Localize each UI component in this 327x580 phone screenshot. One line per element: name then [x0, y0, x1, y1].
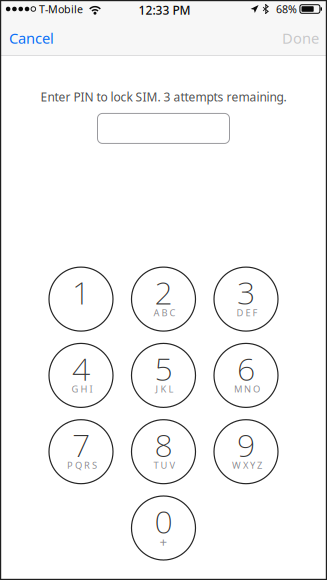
- staticText: Done: [282, 28, 319, 48]
- staticText: +: [159, 533, 167, 550]
- staticText: PQRS: [67, 459, 97, 471]
- staticText: WXYZ: [232, 459, 262, 471]
- staticText: 1: [72, 271, 90, 313]
- button[interactable]: 7 PQRS: [49, 420, 113, 484]
- staticText: 12:33 PM: [138, 2, 190, 18]
- button[interactable]: Cancel: [1, 21, 62, 55]
- staticText: 2: [154, 271, 172, 313]
- staticText: 4: [72, 347, 90, 390]
- button[interactable]: 1: [49, 267, 113, 331]
- staticText: 5: [154, 347, 172, 390]
- button[interactable]: 2 ABC: [131, 267, 195, 331]
- staticText: ABC: [153, 306, 175, 319]
- staticText: MNO: [234, 383, 260, 395]
- staticText: 0: [154, 500, 172, 542]
- staticText: 6: [237, 347, 255, 390]
- button[interactable]: PIN: [97, 113, 229, 143]
- button[interactable]: 5 JKL: [131, 343, 195, 407]
- staticText: DEF: [236, 306, 257, 319]
- staticText: 68%: [276, 2, 297, 16]
- staticText: GHI: [71, 383, 92, 395]
- staticText: 9: [237, 423, 255, 466]
- staticText: JKL: [155, 383, 173, 395]
- staticText: Cancel: [9, 28, 54, 48]
- button[interactable]: 4 GHI: [49, 343, 113, 407]
- staticText: 3: [237, 271, 255, 313]
- button[interactable]: 0: [131, 496, 195, 560]
- staticText: T-Mobile: [39, 2, 83, 16]
- staticText: Enter PIN to lock SIM. 3 attempts remain…: [40, 89, 286, 105]
- staticText: TUV: [153, 459, 175, 471]
- button[interactable]: 3 DEF: [214, 267, 278, 331]
- button[interactable]: 8 TUV: [131, 420, 195, 484]
- button[interactable]: Done: [274, 21, 327, 55]
- staticText: 8: [154, 423, 172, 466]
- button[interactable]: 6 MNO: [214, 343, 278, 407]
- button[interactable]: 9 WXYZ: [214, 420, 278, 484]
- staticText: 7: [72, 423, 90, 466]
